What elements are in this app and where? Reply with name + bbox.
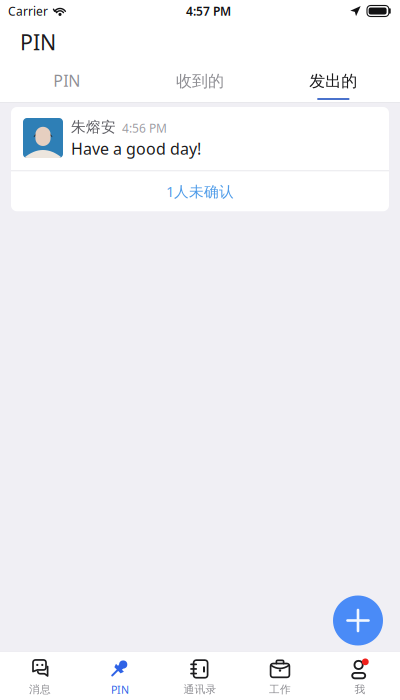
- button[interactable]: New PIN: [333, 595, 383, 645]
- button[interactable]: 通讯录: [160, 652, 240, 700]
- button[interactable]: 工作: [240, 652, 320, 700]
- button[interactable]: PIN: [80, 652, 160, 700]
- staticText: 4:57 PM: [186, 3, 231, 19]
- button[interactable]: 发出的: [267, 62, 400, 102]
- staticText: Carrier: [8, 3, 48, 19]
- staticText: 消息: [29, 683, 51, 696]
- staticText: 收到的: [176, 71, 224, 91]
- staticText: PIN: [111, 682, 129, 697]
- staticText: Have a good day!: [71, 138, 201, 159]
- button[interactable]: 收到的: [133, 62, 267, 102]
- staticText: 工作: [269, 683, 291, 696]
- button[interactable]: 朱熔安: [11, 107, 389, 211]
- staticText: 通讯录: [183, 683, 216, 696]
- staticText: 发出的: [309, 71, 357, 91]
- staticText: PIN: [53, 70, 80, 91]
- button[interactable]: PIN: [0, 62, 133, 102]
- button[interactable]: 消息: [0, 652, 80, 700]
- button[interactable]: 我: [320, 652, 400, 700]
- staticText: 1人未确认: [166, 181, 234, 201]
- staticText: PIN: [20, 28, 56, 56]
- staticText: 朱熔安: [71, 118, 116, 136]
- staticText: 4:56 PM: [122, 120, 167, 136]
- staticText: 我: [354, 683, 365, 696]
